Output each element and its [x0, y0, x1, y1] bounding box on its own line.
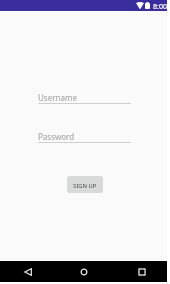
button[interactable]: SIGN UP — [67, 176, 103, 193]
button[interactable]: Back — [16, 261, 39, 282]
staticText: Password — [38, 131, 75, 142]
button[interactable]: Recents — [131, 261, 153, 282]
button[interactable]: Password — [38, 131, 131, 143]
staticText: Username — [38, 92, 77, 103]
staticText: SIGN UP — [73, 182, 97, 190]
button[interactable]: Username — [38, 92, 131, 104]
button[interactable]: Home — [73, 261, 95, 282]
staticText: 8:00 — [153, 2, 167, 12]
